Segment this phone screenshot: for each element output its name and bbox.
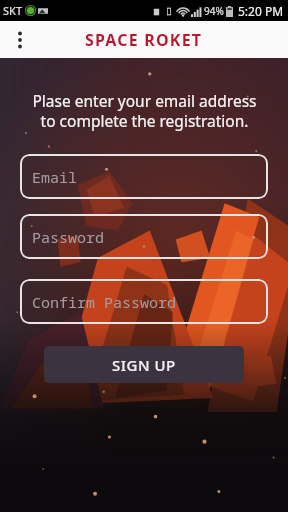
staticText: 5:20 PM: [238, 3, 284, 19]
button[interactable]: Email: [20, 154, 268, 199]
staticText: SPACE ROKET: [85, 29, 203, 51]
staticText: SKT: [3, 3, 23, 18]
button[interactable]: More options: [6, 26, 34, 54]
button[interactable]: Confirm Password: [20, 279, 268, 324]
staticText: SIGN UP: [112, 355, 176, 375]
button[interactable]: Password: [20, 214, 268, 259]
staticText: Plase enter your email address to comple…: [32, 90, 257, 132]
staticText: 94%: [204, 4, 224, 18]
staticText: Confirm Password: [32, 292, 177, 312]
staticText: Email: [32, 167, 78, 187]
button[interactable]: SIGN UP: [44, 346, 244, 383]
staticText: Password: [32, 227, 105, 247]
